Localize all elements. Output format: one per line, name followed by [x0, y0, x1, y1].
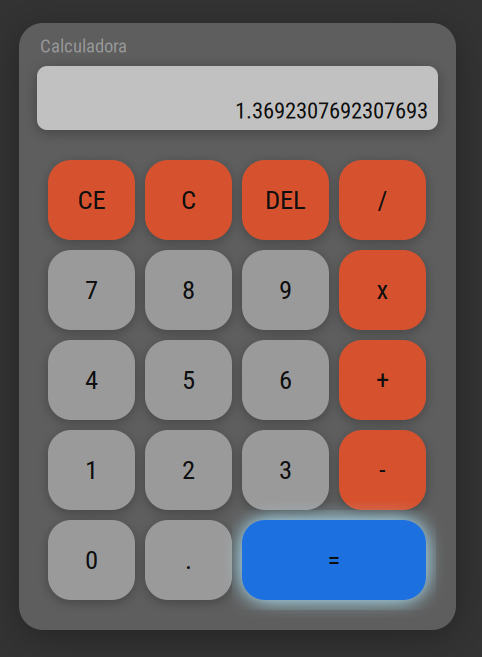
staticText: 9: [279, 274, 292, 306]
button[interactable]: 2: [145, 430, 232, 510]
button[interactable]: Decimal point: [145, 520, 232, 600]
staticText: DEL: [265, 184, 306, 216]
button[interactable]: 6: [242, 340, 329, 420]
staticText: +: [376, 364, 389, 396]
button[interactable]: Divide: [339, 160, 426, 240]
button[interactable]: 7: [48, 250, 135, 330]
staticText: 5: [182, 364, 195, 396]
staticText: -: [379, 454, 386, 486]
staticText: .: [185, 544, 192, 576]
button[interactable]: 8: [145, 250, 232, 330]
button[interactable]: 0: [48, 520, 135, 600]
button[interactable]: 5: [145, 340, 232, 420]
button[interactable]: 1: [48, 430, 135, 510]
staticText: 1.3692307692307693: [235, 97, 428, 124]
button[interactable]: Clear entry: [48, 160, 135, 240]
button[interactable]: 9: [242, 250, 329, 330]
staticText: 8: [182, 274, 195, 306]
button[interactable]: 3: [242, 430, 329, 510]
staticText: 2: [182, 454, 195, 486]
button[interactable]: Add: [339, 340, 426, 420]
staticText: 7: [85, 274, 98, 306]
button[interactable]: Delete: [242, 160, 329, 240]
button[interactable]: Equals: [242, 520, 426, 600]
button[interactable]: Subtract: [339, 430, 426, 510]
staticText: 3: [279, 454, 292, 486]
button[interactable]: Multiply: [339, 250, 426, 330]
staticText: 4: [85, 364, 98, 396]
staticText: Calculadora: [40, 35, 127, 57]
staticText: x: [376, 274, 388, 306]
staticText: 0: [85, 544, 98, 576]
staticText: CE: [77, 184, 105, 216]
staticText: 1: [85, 454, 98, 486]
staticText: C: [181, 184, 196, 216]
staticText: 6: [279, 364, 292, 396]
staticText: =: [327, 544, 340, 576]
staticText: /: [377, 184, 387, 216]
button[interactable]: Clear: [145, 160, 232, 240]
button[interactable]: 4: [48, 340, 135, 420]
